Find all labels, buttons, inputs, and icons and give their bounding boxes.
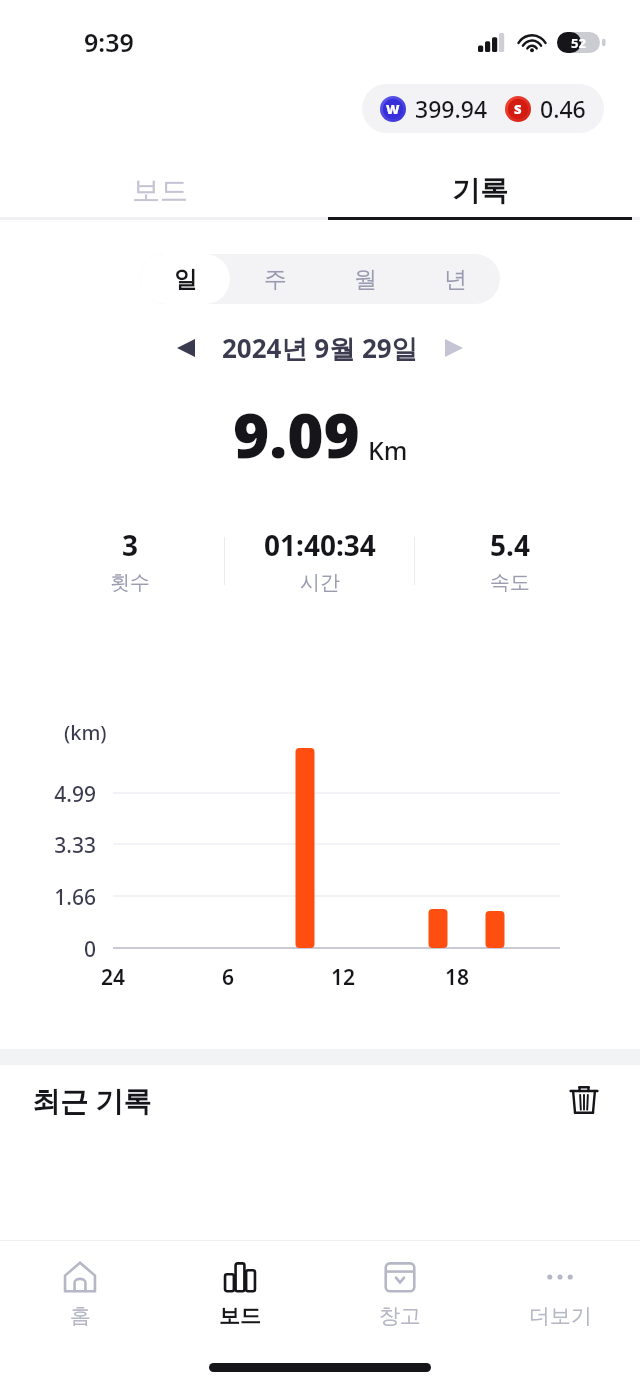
staticText: 4.99 bbox=[0, 780, 96, 809]
staticText: 12 bbox=[313, 963, 373, 992]
button[interactable]: Delete records bbox=[560, 1076, 608, 1124]
button[interactable]: 월 bbox=[320, 254, 410, 304]
button[interactable]: 보드 bbox=[160, 1241, 320, 1347]
button[interactable]: 보드 bbox=[0, 163, 320, 217]
button[interactable]: 홈 bbox=[0, 1241, 160, 1347]
staticText: 일 bbox=[174, 265, 197, 294]
staticText: 횟수 bbox=[110, 570, 150, 595]
staticText: S bbox=[514, 100, 522, 118]
staticText: 더보기 bbox=[529, 1303, 592, 1329]
staticText: 9:39 bbox=[84, 25, 134, 59]
button[interactable]: 더보기 bbox=[480, 1241, 640, 1347]
staticText: 홈 bbox=[70, 1303, 91, 1329]
staticText: 0 bbox=[0, 935, 96, 964]
staticText: 3 bbox=[122, 526, 139, 564]
staticText: 주 bbox=[264, 265, 287, 294]
staticText: 0.46 bbox=[540, 93, 586, 124]
button[interactable]: 년 bbox=[410, 254, 500, 304]
button[interactable]: 주 bbox=[230, 254, 320, 304]
button[interactable]: Previous day bbox=[164, 326, 208, 370]
staticText: Km bbox=[368, 433, 408, 467]
staticText: 01:40:34 bbox=[264, 526, 376, 564]
staticText: 6 bbox=[198, 963, 258, 992]
staticText: 2024년 9월 29일 bbox=[222, 330, 418, 366]
button[interactable]: 창고 bbox=[320, 1241, 480, 1347]
staticText: 보드 bbox=[132, 173, 188, 208]
button[interactable]: W bbox=[362, 84, 604, 133]
button[interactable]: 기록 bbox=[320, 163, 640, 217]
staticText: 속도 bbox=[490, 570, 530, 595]
staticText: 시간 bbox=[300, 570, 340, 595]
staticText: 월 bbox=[354, 265, 377, 294]
button[interactable]: Next day bbox=[432, 326, 476, 370]
staticText: 3.33 bbox=[0, 831, 96, 860]
button[interactable]: 일 bbox=[140, 254, 230, 304]
button[interactable]: 3 bbox=[36, 504, 604, 617]
staticText: 5.4 bbox=[490, 526, 530, 564]
staticText: 24 bbox=[83, 963, 143, 992]
staticText: 52 bbox=[571, 34, 586, 52]
staticText: 창고 bbox=[379, 1303, 421, 1329]
staticText: (km) bbox=[64, 719, 107, 746]
staticText: 년 bbox=[444, 265, 467, 294]
staticText: W bbox=[386, 100, 400, 118]
staticText: 399.94 bbox=[415, 93, 488, 124]
staticText: 9.09 bbox=[233, 392, 360, 476]
staticText: 1.66 bbox=[0, 883, 96, 912]
staticText: 최근 기록 bbox=[32, 1081, 152, 1119]
staticText: 기록 bbox=[452, 173, 508, 208]
staticText: 보드 bbox=[219, 1303, 261, 1329]
staticText: 18 bbox=[427, 963, 487, 992]
